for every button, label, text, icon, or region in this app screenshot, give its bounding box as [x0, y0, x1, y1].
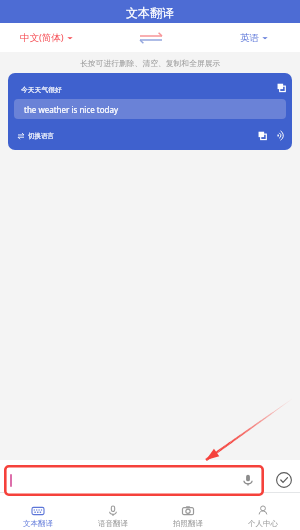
button[interactable]: 今天天气很好: [8, 73, 292, 150]
button[interactable]: the weather is nice today: [14, 99, 286, 119]
button[interactable]: 拍照翻译: [150, 499, 225, 530]
staticText: 切换语言: [28, 132, 54, 140]
button[interactable]: 英语: [240, 28, 268, 48]
staticText: 文本翻译: [23, 519, 53, 528]
staticText: 拍照翻译: [173, 519, 203, 528]
button[interactable]: 个人中心: [225, 499, 300, 530]
button[interactable]: Swap languages: [136, 27, 166, 49]
button[interactable]: 切换语言: [18, 132, 54, 140]
staticText: 长按可进行删除、清空、复制和全屏展示: [80, 58, 221, 68]
button[interactable]: Copy source text: [277, 83, 286, 92]
button[interactable]: 文本翻译: [0, 499, 75, 530]
button[interactable]: Play audio: [277, 131, 286, 140]
staticText: the weather is nice today: [24, 104, 119, 115]
button[interactable]: Confirm: [276, 472, 292, 488]
button[interactable]: 语音翻译: [75, 499, 150, 530]
staticText: 语音翻译: [98, 519, 128, 528]
staticText: 中文(简体): [20, 31, 64, 44]
button[interactable]: Copy translation: [258, 131, 267, 140]
button[interactable]: Voice input: [242, 474, 254, 486]
staticText: 个人中心: [248, 519, 278, 528]
button[interactable]: Voice input: [4, 465, 264, 496]
button[interactable]: 中文(简体): [20, 27, 73, 48]
staticText: 今天天气很好: [21, 85, 62, 94]
staticText: 英语: [240, 32, 259, 44]
staticText: 文本翻译: [126, 5, 174, 20]
